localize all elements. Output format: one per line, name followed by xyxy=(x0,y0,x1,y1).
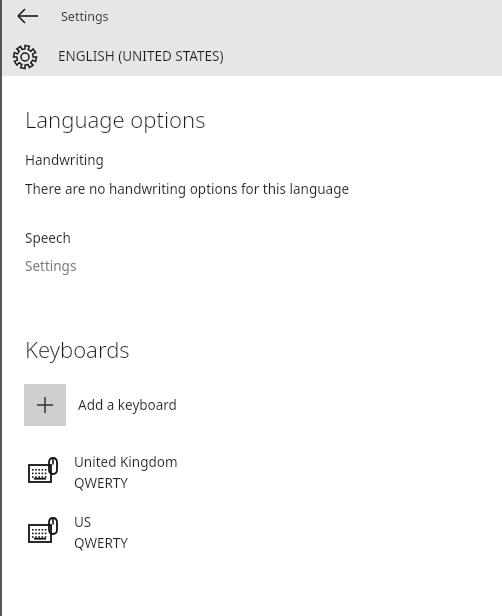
staticText: There are no handwriting options for thi… xyxy=(25,180,350,198)
staticText: Settings xyxy=(25,257,77,275)
staticText: QWERTY xyxy=(74,474,129,492)
staticText: Keyboards xyxy=(25,334,130,364)
staticText: Add a keyboard xyxy=(78,396,177,414)
button[interactable]: US xyxy=(20,508,340,556)
staticText: ENGLISH (UNITED STATES) xyxy=(58,47,224,65)
staticText: US xyxy=(74,513,92,531)
button[interactable]: Settings xyxy=(25,257,77,275)
button[interactable]: Language settings xyxy=(11,43,39,71)
staticText: Settings xyxy=(61,8,109,25)
button[interactable]: Back xyxy=(8,2,48,30)
staticText: Handwriting xyxy=(25,151,104,169)
button[interactable]: Add a keyboard xyxy=(24,383,324,427)
staticText: United Kingdom xyxy=(74,453,178,471)
button[interactable]: United Kingdom xyxy=(20,448,340,496)
staticText: Speech xyxy=(25,229,71,247)
staticText: Language options xyxy=(25,104,206,134)
staticText: QWERTY xyxy=(74,534,129,552)
